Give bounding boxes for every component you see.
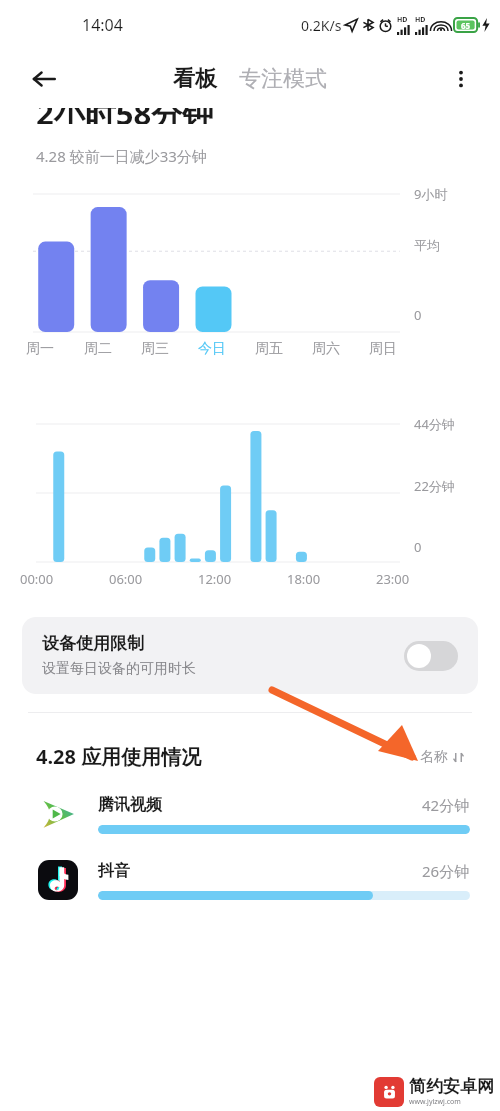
staticText: 26分钟	[422, 861, 470, 881]
staticText: 4.28 较前一日减少33分钟	[36, 146, 207, 166]
button[interactable]: 设备使用限制	[22, 617, 478, 694]
staticText: 4.28 应用使用情况	[36, 743, 202, 770]
staticText: 抖音	[98, 861, 130, 881]
staticText: 专注模式	[239, 65, 327, 93]
staticText: 周日	[369, 340, 397, 358]
staticText: 44分钟	[414, 415, 455, 433]
staticText: 9小时	[414, 185, 448, 203]
button[interactable]: More options	[440, 58, 482, 100]
staticText: 周一	[26, 340, 54, 358]
staticText: 00:00	[20, 570, 54, 588]
staticText: 周二	[84, 340, 112, 358]
staticText: 42分钟	[422, 795, 470, 815]
staticText: 23:00	[376, 570, 410, 588]
staticText: 0.2K/s	[301, 16, 342, 35]
staticText: 周六	[312, 340, 340, 358]
staticText: 设备使用限制	[42, 633, 144, 654]
staticText: 06:00	[109, 570, 143, 588]
staticText: HD	[397, 15, 408, 25]
staticText: www.jylzwj.com	[409, 1097, 461, 1107]
staticText: 腾讯视频	[98, 795, 162, 815]
staticText: 周三	[141, 340, 169, 358]
staticText: 今日	[198, 340, 226, 358]
staticText: 名称	[420, 748, 448, 766]
button[interactable]: 名称	[420, 748, 464, 766]
staticText: 2小时58分钟	[36, 108, 214, 124]
staticText: 简约安卓网	[409, 1076, 494, 1097]
button[interactable]: 抖音	[0, 858, 500, 902]
button[interactable]: 专注模式	[239, 65, 327, 93]
staticText: 看板	[173, 65, 217, 93]
button[interactable]: Toggle device usage limit	[404, 641, 458, 671]
staticText: 周五	[255, 340, 283, 358]
button[interactable]: Back	[22, 57, 66, 101]
staticText: 14:04	[82, 14, 123, 36]
staticText: 平均	[414, 237, 440, 253]
staticText: HD	[415, 15, 426, 25]
staticText: 12:00	[198, 570, 232, 588]
staticText: 22分钟	[414, 477, 455, 495]
staticText: 65	[461, 20, 471, 31]
staticText: 0	[414, 306, 422, 324]
staticText: 18:00	[287, 570, 321, 588]
button[interactable]: 腾讯视频	[0, 792, 500, 836]
staticText: 设置每日设备的可用时长	[42, 660, 196, 678]
button[interactable]: 看板	[173, 65, 217, 93]
staticText: 0	[414, 538, 422, 556]
